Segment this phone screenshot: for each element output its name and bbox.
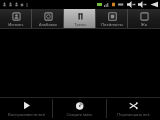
button[interactable]: Исполн. [0, 9, 32, 28]
staticText: Жа [141, 22, 147, 27]
button[interactable]: Create mix [53, 97, 106, 120]
staticText: Перемешать всё [117, 112, 150, 117]
button[interactable]: Play all [0, 97, 52, 120]
staticText: Воспроизвести всё [8, 112, 45, 117]
staticText: Плейлисты [101, 22, 123, 27]
staticText: Треки [74, 22, 86, 27]
staticText: Исполн. [8, 22, 24, 27]
button[interactable]: Плейлисты [96, 9, 128, 28]
button[interactable]: Shuffle all [107, 97, 160, 120]
button[interactable]: Жа [128, 9, 160, 28]
button[interactable]: Треки [64, 9, 96, 28]
staticText: Создать микс [66, 112, 93, 117]
button[interactable]: Альбомы [32, 9, 64, 28]
staticText: Альбомы [39, 22, 57, 27]
